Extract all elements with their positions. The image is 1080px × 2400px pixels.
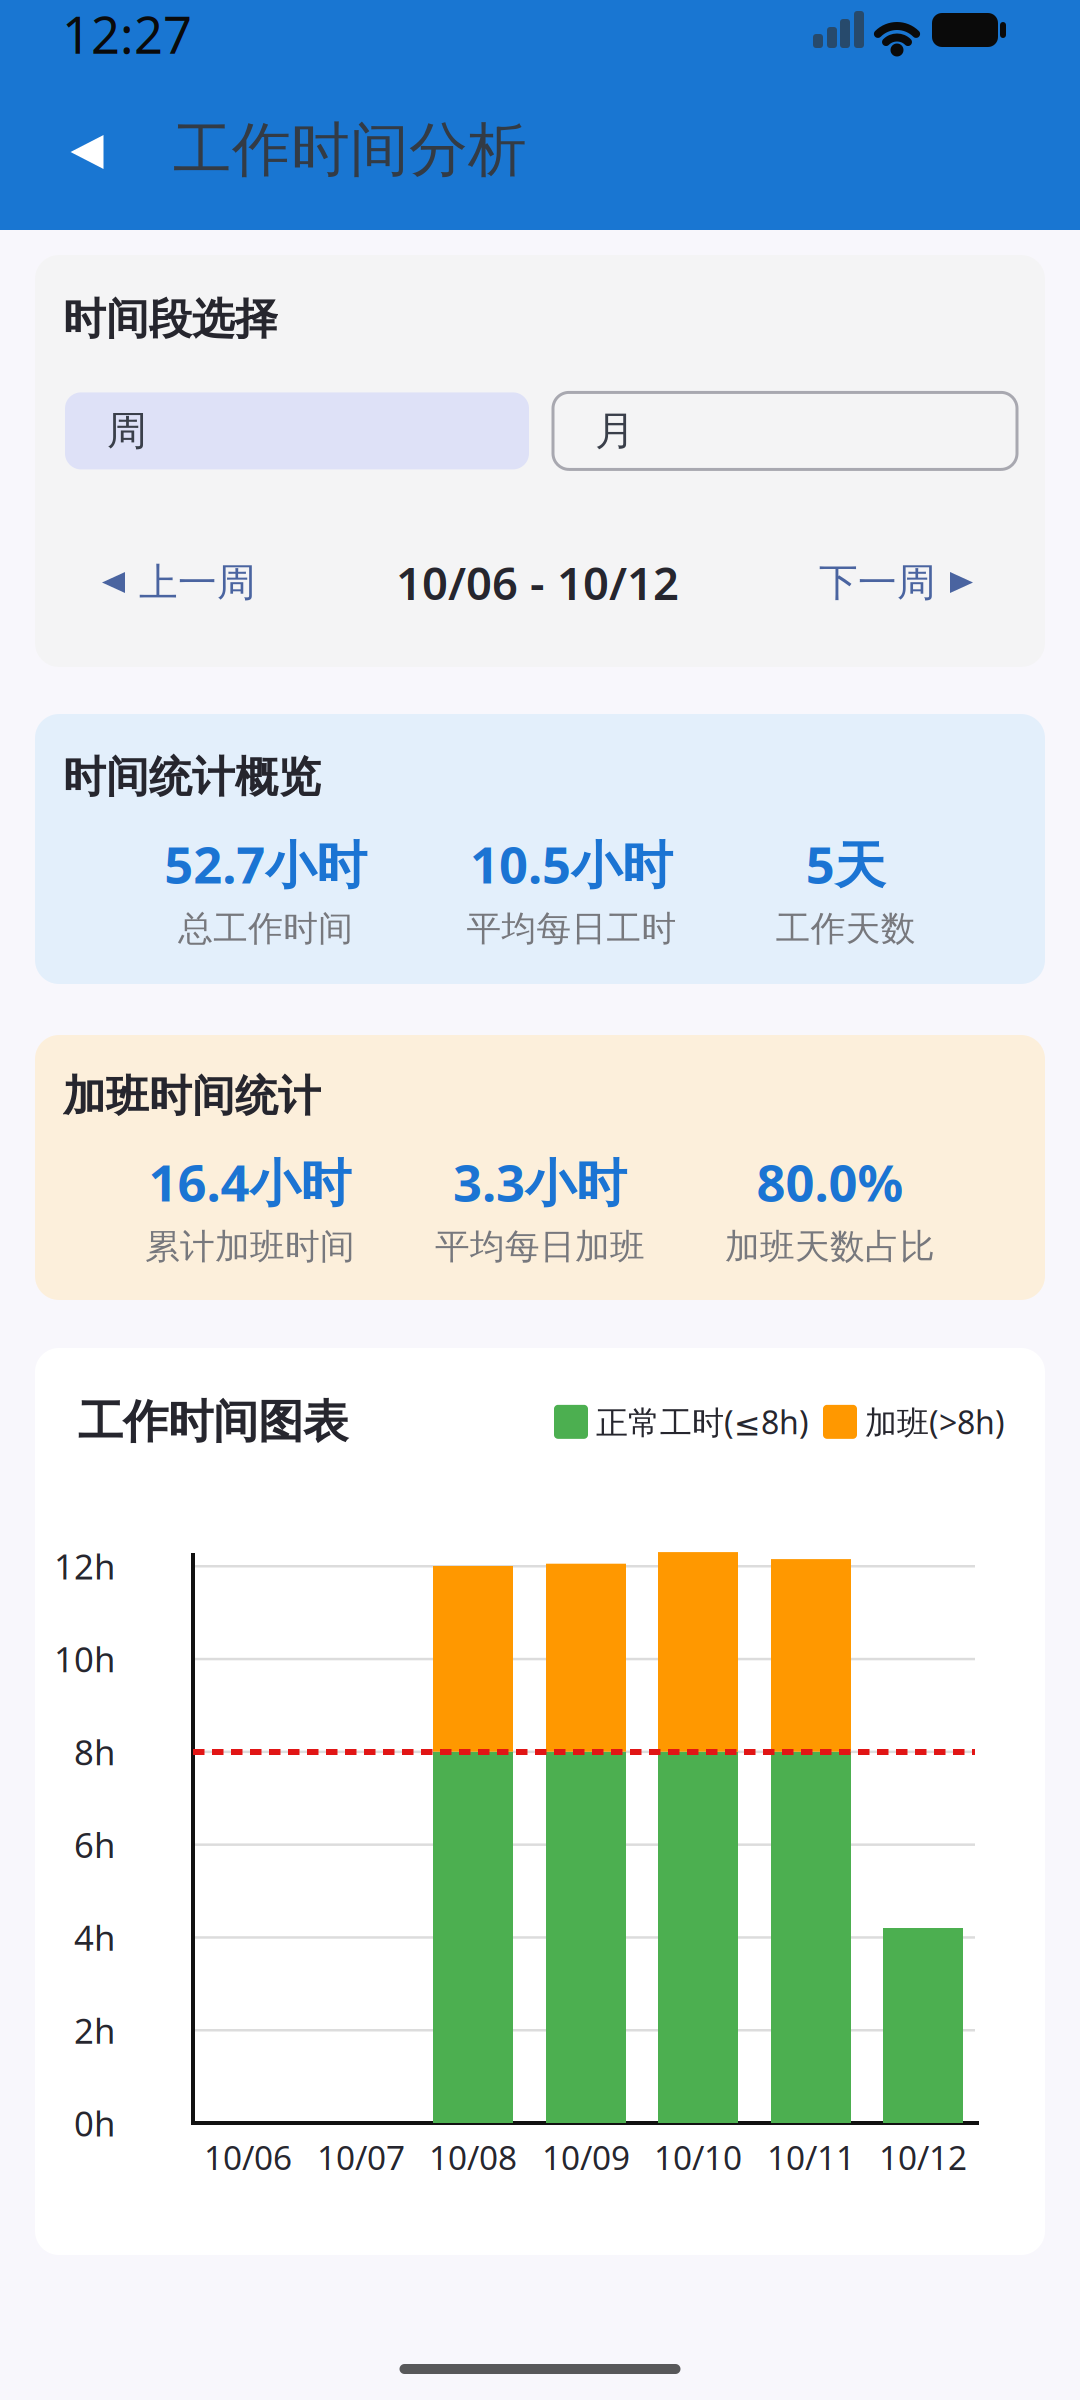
staticText: 累计加班时间 [145,1225,355,1268]
button[interactable]: 上一周 [102,559,256,606]
staticText: 加班(>8h) [865,1401,1005,1443]
staticText: 工作时间分析 [173,114,527,186]
staticText: 52.7小时 [164,830,367,897]
staticText: 正常工时(≤8h) [596,1401,809,1443]
staticText: 工作天数 [776,907,916,950]
staticText: 8h [74,1729,115,1775]
staticText: 12h [54,1543,115,1589]
staticText: 10h [54,1636,115,1682]
staticText: 2h [74,2007,115,2053]
button[interactable]: Back [70,135,103,169]
staticText: 10/07 [317,2135,405,2179]
staticText: 工作时间图表 [78,1394,348,1450]
button[interactable]: 月 [553,392,1017,469]
staticText: 平均每日加班 [435,1225,645,1268]
staticText: 加班天数占比 [725,1225,935,1268]
staticText: 10/12 [879,2135,967,2179]
staticText: 0h [74,2100,115,2146]
staticText: 12:27 [62,0,192,68]
staticText: 10/11 [767,2135,855,2179]
staticText: 加班时间统计 [63,1070,321,1122]
staticText: 平均每日工时 [466,907,676,950]
staticText: 10.5小时 [470,830,673,897]
staticText: 上一周 [139,559,256,606]
staticText: 16.4小时 [148,1148,351,1215]
staticText: 下一周 [819,559,936,606]
staticText: 6h [74,1821,115,1867]
staticText: 10/09 [542,2135,630,2179]
staticText: 3.3小时 [453,1148,627,1215]
staticText: 10/06 - 10/12 [396,552,679,613]
staticText: 周 [107,406,147,455]
button[interactable]: 周 [65,392,529,469]
staticText: 时间段选择 [63,293,278,345]
staticText: 5天 [806,830,886,897]
staticText: 总工作时间 [178,907,353,950]
staticText: 4h [74,1914,115,1960]
staticText: 10/10 [654,2135,742,2179]
button[interactable]: 下一周 [819,559,973,606]
staticText: 时间统计概览 [63,751,321,803]
staticText: 10/08 [429,2135,517,2179]
staticText: 10/06 [204,2135,292,2179]
staticText: 80.0% [756,1148,903,1215]
staticText: 月 [595,406,635,455]
